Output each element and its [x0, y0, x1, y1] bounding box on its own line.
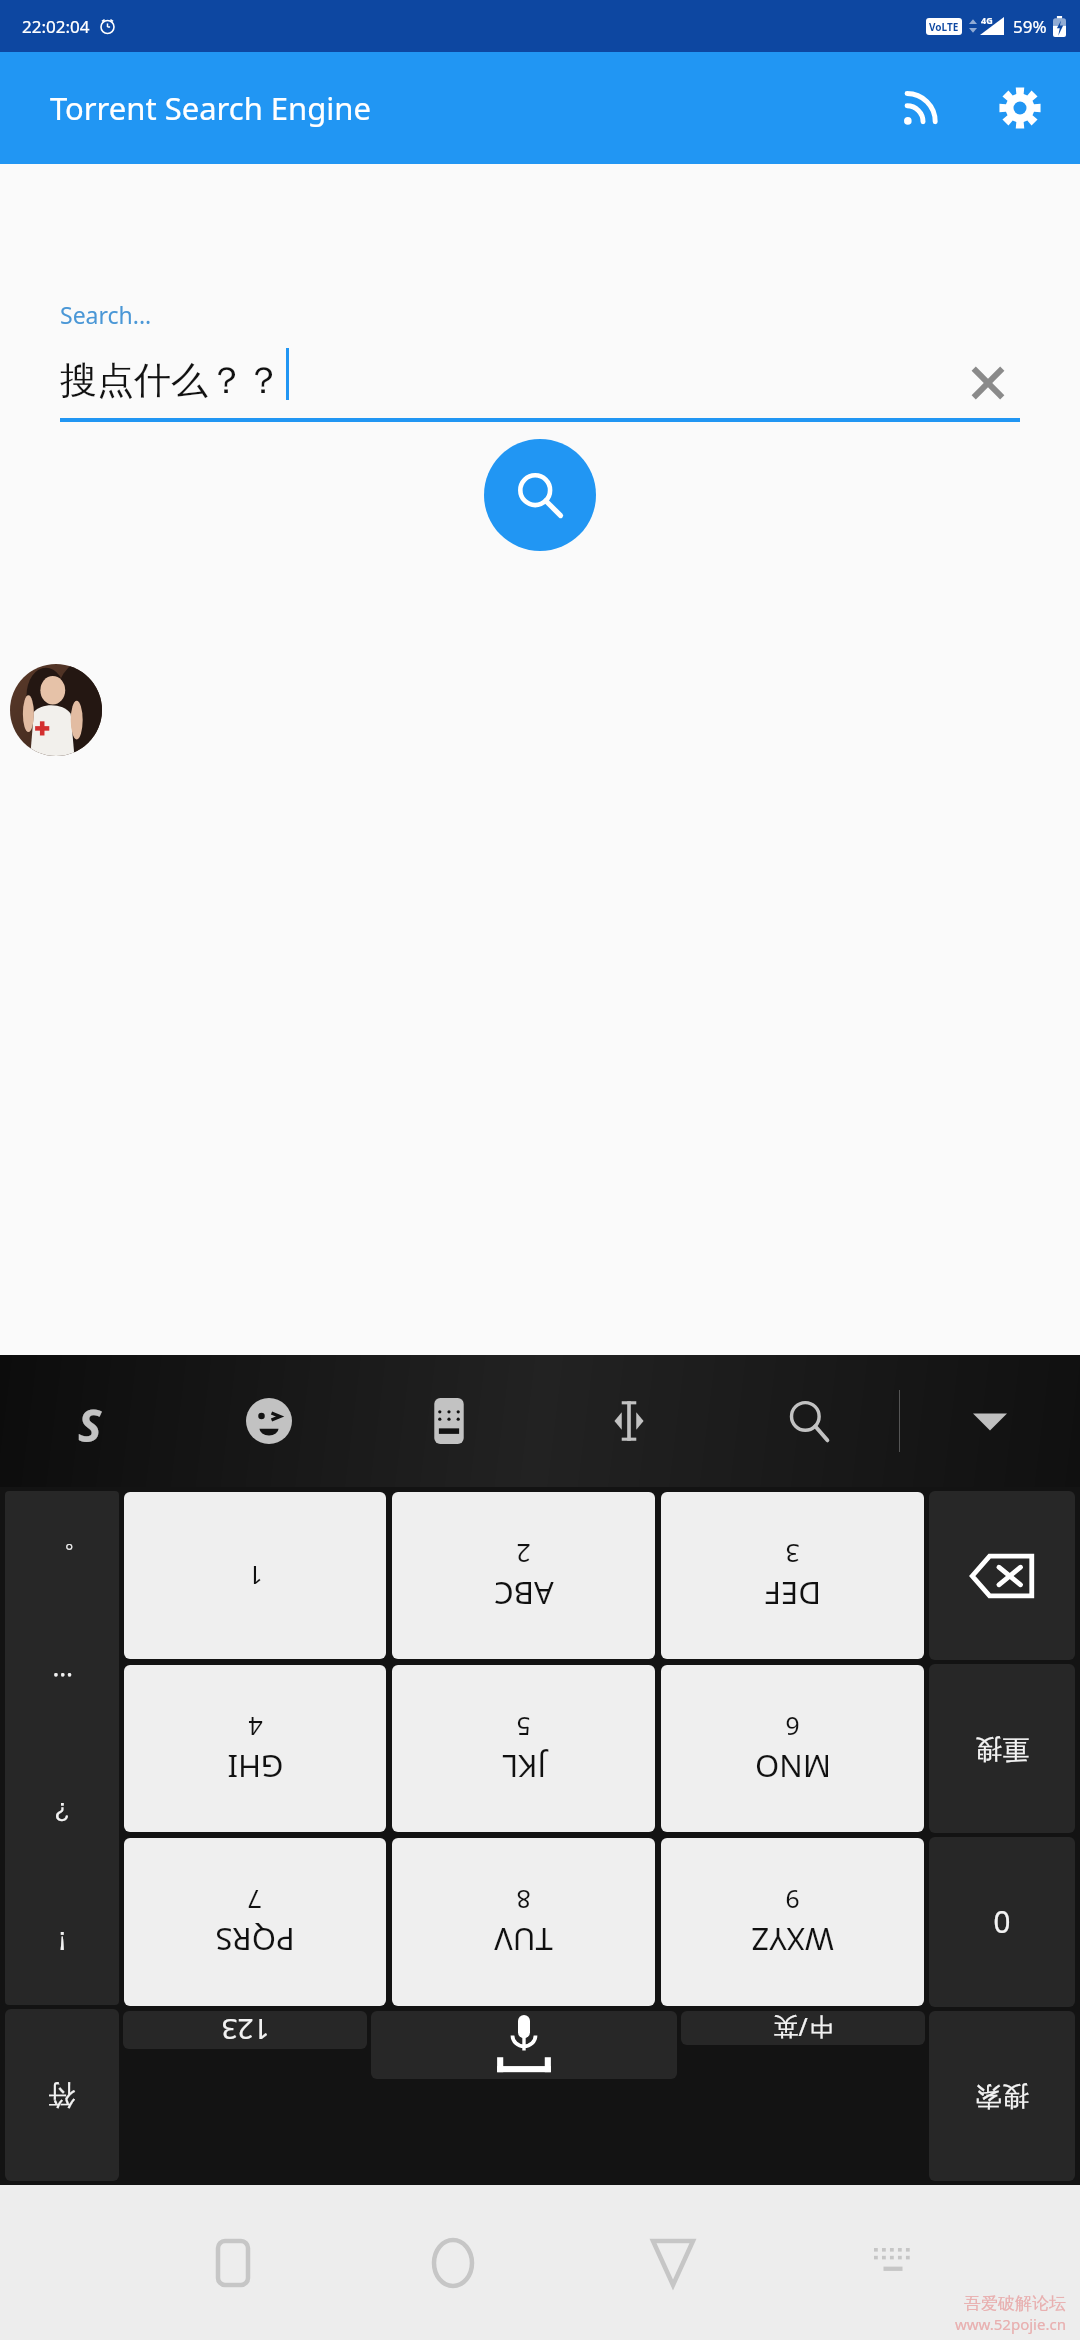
button[interactable]: Result thumbnail	[10, 664, 102, 756]
button[interactable]: Backspace	[929, 1491, 1075, 1660]
button[interactable]: Clear text	[956, 351, 1020, 415]
staticText: S	[78, 1395, 102, 1447]
button[interactable]: 。	[5, 1491, 119, 2005]
button[interactable]: Search	[484, 439, 596, 551]
staticText: 3	[785, 1537, 800, 1571]
staticText: GHI	[227, 1746, 284, 1788]
button[interactable]: ABC	[392, 1492, 655, 1659]
staticText: 6	[785, 1710, 800, 1744]
staticText: 4	[248, 1710, 263, 1744]
button[interactable]: 搜索	[929, 2011, 1075, 2181]
button[interactable]: Recents	[122, 2185, 343, 2340]
staticText: 5	[516, 1710, 531, 1744]
button[interactable]: Keyboard layout	[359, 1355, 539, 1487]
staticText: ？	[49, 1795, 75, 1828]
button[interactable]: TUV	[392, 1838, 655, 2006]
staticText: Search...	[60, 299, 152, 330]
staticText: 59%	[1013, 15, 1047, 38]
staticText: www.52pojie.cn	[955, 2314, 1066, 2334]
button[interactable]: Sogou input	[0, 1355, 179, 1487]
staticText: 符	[48, 2078, 76, 2113]
button[interactable]: Space / voice input	[371, 2011, 677, 2079]
staticText: 2	[516, 1537, 531, 1571]
staticText: 22:02:04	[22, 15, 90, 38]
staticText: 1	[248, 1559, 263, 1593]
button[interactable]: 123	[123, 2011, 367, 2049]
button[interactable]: Home	[343, 2185, 563, 2340]
button[interactable]: RSS feeds	[884, 72, 956, 144]
button[interactable]: Emoji	[179, 1355, 359, 1487]
button[interactable]: 符	[5, 2009, 119, 2181]
staticText: VoLTE	[929, 20, 959, 34]
button[interactable]: PQRS	[124, 1838, 386, 2006]
staticText: 8	[516, 1883, 531, 1917]
staticText: 9	[785, 1883, 800, 1917]
staticText: 中/英	[773, 2011, 833, 2045]
staticText: Torrent Search Engine	[50, 87, 371, 129]
staticText: 搜点什么？？	[60, 357, 282, 404]
staticText: 搜索	[975, 2079, 1029, 2113]
staticText: 重搜	[975, 1732, 1029, 1766]
staticText: PQRS	[215, 1919, 295, 1961]
staticText: 123	[221, 2011, 270, 2049]
button[interactable]: Back	[563, 2185, 783, 2340]
button[interactable]: GHI	[124, 1665, 386, 1832]
button[interactable]: Move cursor	[539, 1355, 719, 1487]
button[interactable]: JKL	[392, 1665, 655, 1832]
staticText: …	[52, 1666, 73, 1701]
staticText: MNO	[755, 1746, 831, 1788]
button[interactable]: 1	[124, 1492, 386, 1659]
button[interactable]: Hide keyboard	[783, 2185, 1003, 2340]
staticText: WXYZ	[751, 1919, 834, 1961]
staticText: DEF	[765, 1573, 821, 1615]
button[interactable]: Hide keyboard	[900, 1355, 1080, 1487]
staticText: 7	[247, 1883, 262, 1917]
staticText: ！	[49, 1924, 75, 1957]
staticText: TUV	[494, 1919, 553, 1961]
button[interactable]: 重搜	[929, 1664, 1075, 1833]
button[interactable]: WXYZ	[661, 1838, 924, 2006]
button[interactable]: Search	[719, 1355, 899, 1487]
button[interactable]: MNO	[661, 1665, 924, 1832]
staticText: ABC	[494, 1573, 554, 1615]
staticText: 0	[993, 1902, 1011, 1943]
button[interactable]: 0	[929, 1837, 1075, 2007]
button[interactable]: 中/英	[681, 2011, 925, 2045]
button[interactable]: Settings	[984, 72, 1056, 144]
button[interactable]: DEF	[661, 1492, 924, 1659]
staticText: 4G	[981, 14, 993, 26]
staticText: JKL	[502, 1746, 546, 1788]
staticText: 。	[49, 1539, 75, 1572]
staticText: 吾爱破解论坛	[964, 2293, 1066, 2314]
